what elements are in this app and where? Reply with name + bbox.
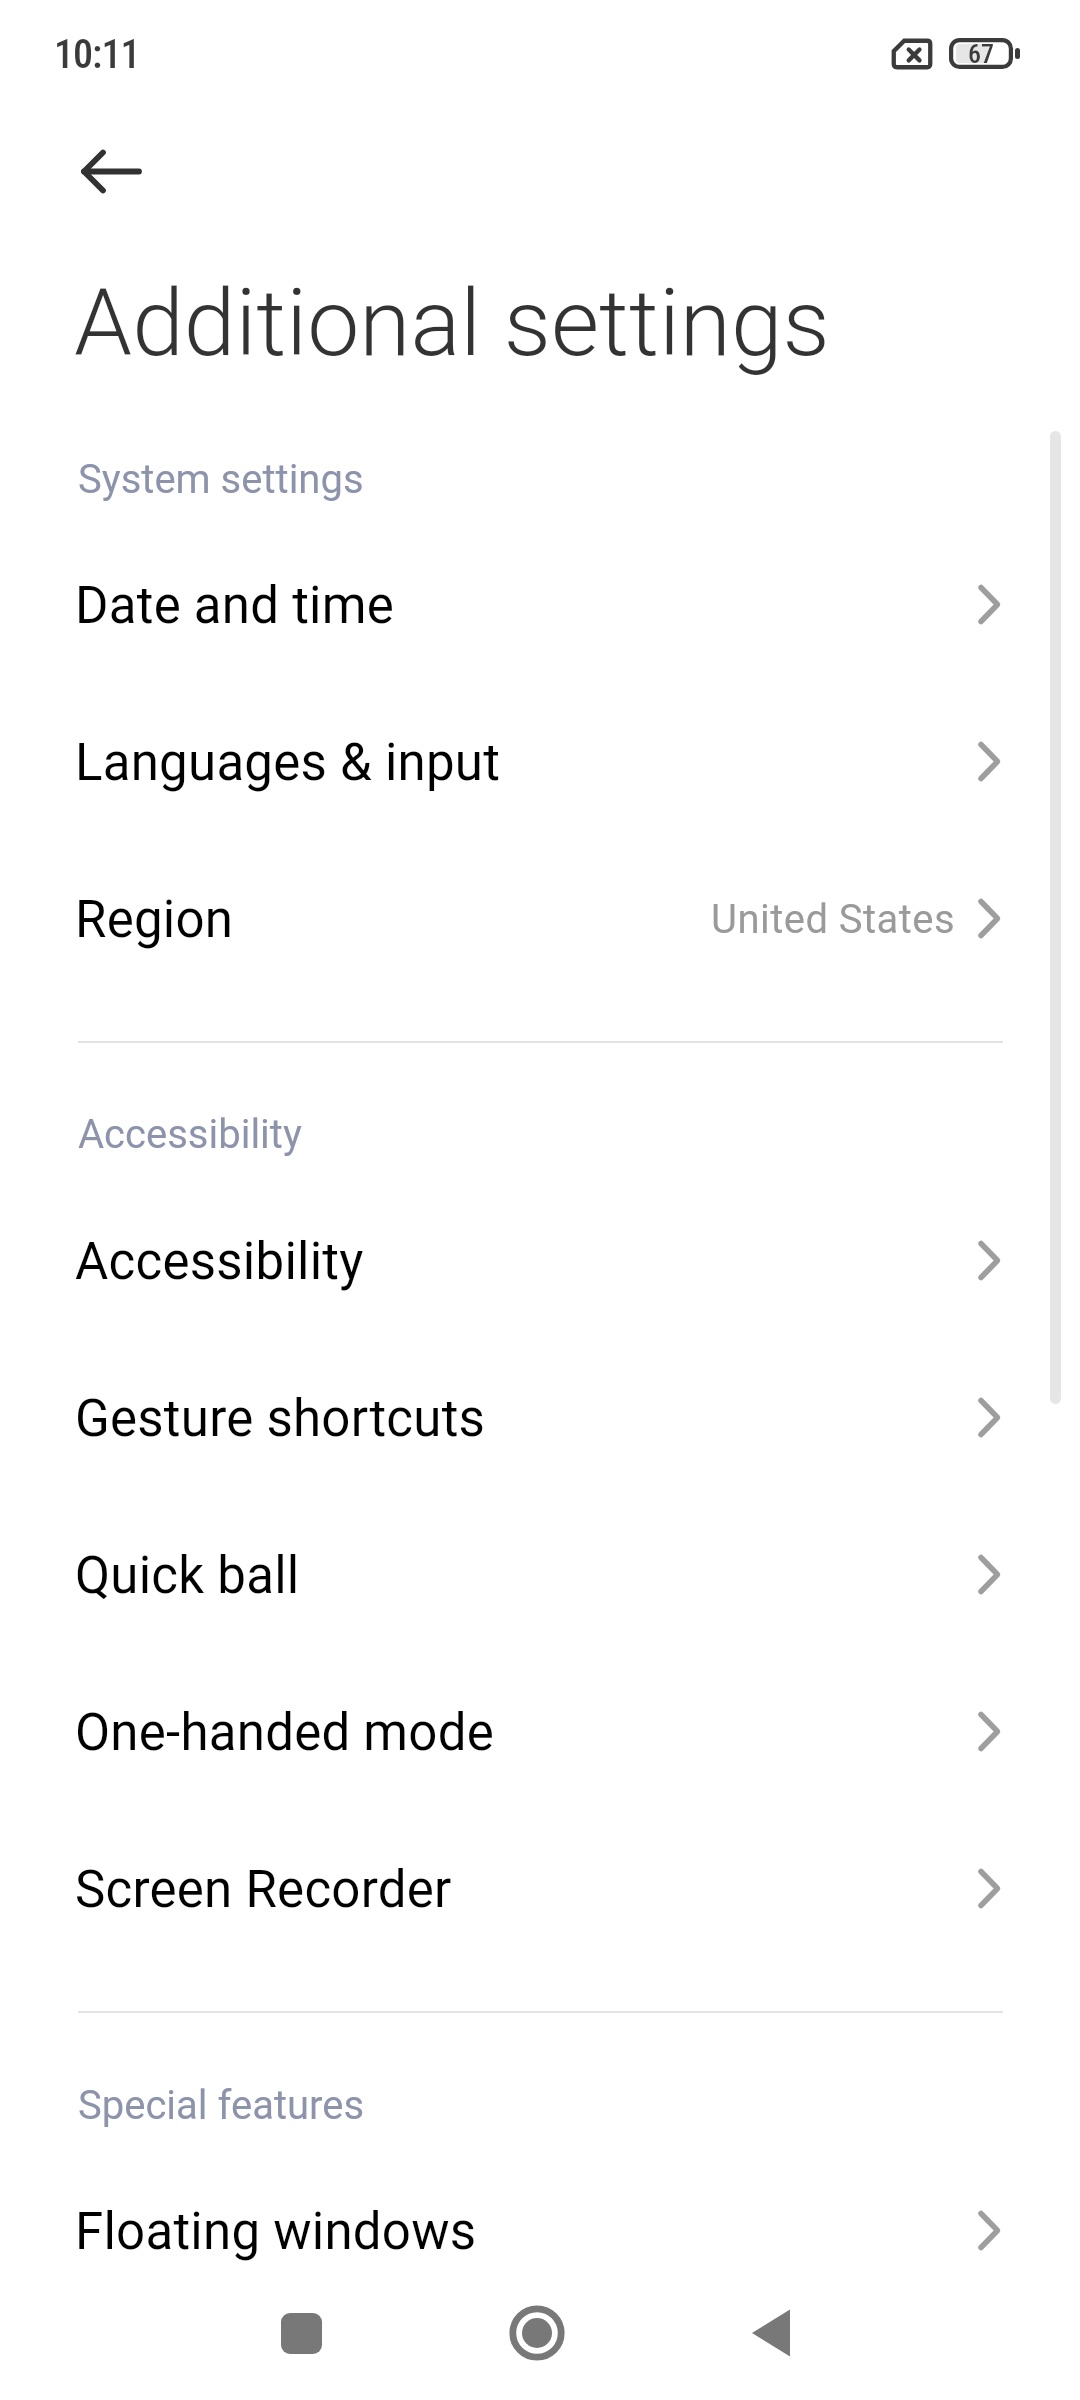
staticText: Floating windows [75, 2202, 477, 2262]
staticText: Additional settings [74, 269, 830, 378]
button[interactable]: Floating windows [0, 2153, 1080, 2310]
staticText: Date and time [75, 576, 395, 636]
staticText: System settings [78, 456, 364, 503]
button[interactable]: Accessibility [0, 1183, 1080, 1340]
staticText: Accessibility [75, 1232, 364, 1292]
button[interactable]: Back [36, 126, 128, 218]
staticText: Accessibility [78, 1111, 302, 1158]
staticText: One-handed mode [75, 1703, 494, 1763]
button[interactable]: Screen Recorder [0, 1811, 1080, 1968]
button[interactable]: One-handed mode [0, 1654, 1080, 1811]
button[interactable]: Region [0, 841, 1080, 998]
staticText: Gesture shortcuts [75, 1389, 486, 1449]
staticText: Special features [78, 2082, 365, 2129]
staticText: 67 [968, 39, 995, 69]
staticText: United States [0, 896, 955, 943]
button[interactable]: Gesture shortcuts [0, 1340, 1080, 1497]
button[interactable]: Recent apps [236, 2268, 366, 2398]
button[interactable]: Date and time [0, 527, 1080, 684]
staticText: Region [75, 890, 234, 950]
staticText: 10:11 [54, 31, 140, 78]
button[interactable]: Languages & input [0, 684, 1080, 841]
staticText: Languages & input [75, 733, 501, 793]
button[interactable]: Quick ball [0, 1497, 1080, 1654]
staticText: Screen Recorder [75, 1860, 452, 1920]
staticText: Quick ball [75, 1546, 300, 1606]
button[interactable]: Back [706, 2268, 836, 2398]
button[interactable]: Home [472, 2268, 602, 2398]
